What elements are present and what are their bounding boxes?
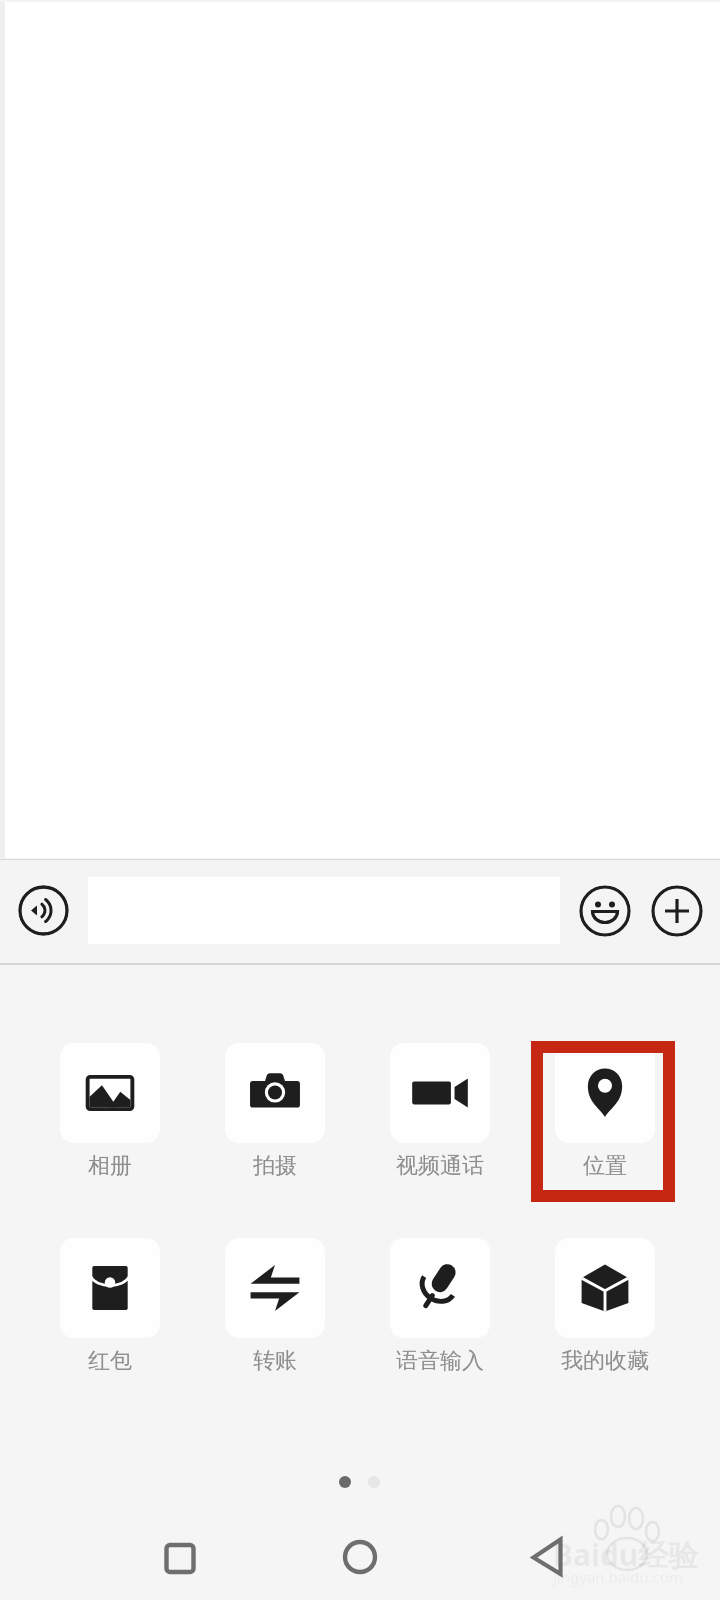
staticText: 拍摄 (253, 1152, 297, 1180)
staticText: Baidu经验 (553, 1534, 699, 1575)
staticText: 相册 (88, 1152, 132, 1180)
button[interactable]: 语音输入 (380, 1238, 500, 1375)
staticText: jingyan.baidu.com (553, 1567, 683, 1587)
button[interactable]: 相册 (50, 1043, 170, 1180)
button[interactable]: 拍摄 (215, 1043, 335, 1180)
button[interactable]: 视频通话 (380, 1043, 500, 1180)
button[interactable]: Voice message (18, 885, 69, 936)
button[interactable]: 红包 (50, 1238, 170, 1375)
staticText: 我的收藏 (561, 1347, 649, 1375)
button[interactable]: More options (651, 885, 703, 937)
button[interactable]: 转账 (215, 1238, 335, 1375)
staticText: 视频通话 (396, 1152, 484, 1180)
button[interactable]: Recent apps (160, 1539, 200, 1579)
button[interactable]: Home (340, 1537, 380, 1577)
staticText: 红包 (88, 1347, 132, 1375)
button[interactable]: 我的收藏 (545, 1238, 665, 1375)
button[interactable]: Emoji (579, 885, 631, 937)
staticText: 语音输入 (396, 1347, 484, 1375)
button[interactable]: 位置 (545, 1043, 665, 1180)
staticText: 转账 (253, 1347, 297, 1375)
staticText: 位置 (583, 1152, 627, 1180)
button[interactable]: Back (528, 1534, 568, 1574)
